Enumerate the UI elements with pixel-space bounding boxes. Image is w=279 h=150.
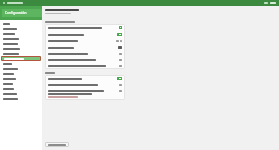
- button[interactable]: [45, 63, 125, 69]
- button[interactable]: Activado: [45, 31, 125, 38]
- button[interactable]: [1, 56, 41, 61]
- button[interactable]: [0, 31, 42, 36]
- button[interactable]: [45, 38, 125, 44]
- button[interactable]: Configuración: [2, 9, 42, 17]
- button[interactable]: [0, 96, 42, 101]
- button[interactable]: Seleccionar: [45, 44, 125, 51]
- button[interactable]: [0, 26, 42, 31]
- button[interactable]: [45, 88, 125, 100]
- button[interactable]: Activado: [45, 75, 125, 82]
- button[interactable]: [0, 91, 42, 96]
- button[interactable]: [0, 71, 42, 76]
- button[interactable]: Seleccionar: [118, 46, 122, 49]
- button[interactable]: [0, 36, 42, 41]
- button[interactable]: [0, 21, 42, 26]
- staticText: Configuración: [5, 11, 27, 15]
- button[interactable]: [0, 81, 42, 86]
- button[interactable]: [45, 82, 125, 88]
- button[interactable]: [0, 51, 42, 56]
- button[interactable]: Opción: [45, 24, 125, 31]
- button[interactable]: [0, 41, 42, 46]
- button[interactable]: [0, 66, 42, 71]
- button[interactable]: Activado: [117, 33, 122, 36]
- button[interactable]: [0, 86, 42, 91]
- button[interactable]: [45, 51, 125, 57]
- button[interactable]: [45, 142, 69, 147]
- button[interactable]: [45, 57, 125, 63]
- button[interactable]: Activado: [117, 77, 122, 80]
- button[interactable]: [0, 46, 42, 51]
- button[interactable]: [0, 61, 42, 66]
- button[interactable]: Opción: [119, 26, 122, 29]
- button[interactable]: [0, 76, 42, 81]
